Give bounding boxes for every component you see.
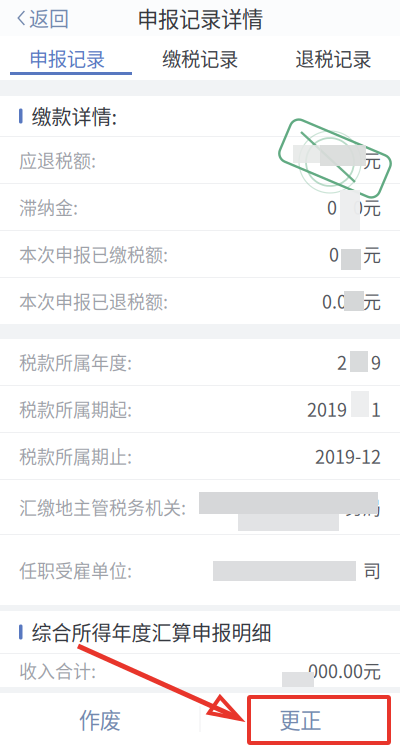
staticText: 2019 1 [307, 396, 381, 422]
staticText: 应退税额: [19, 147, 96, 173]
button[interactable]: 更正 [200, 693, 400, 745]
staticText: 2019-12 [315, 443, 381, 469]
button[interactable]: 返回 [0, 0, 83, 36]
staticText: 0 元 [329, 241, 381, 267]
staticText: 0 0元 [327, 194, 381, 220]
staticText: 本次申报已缴税额: [19, 241, 168, 267]
staticText: 收入合计: [19, 657, 96, 684]
staticText: 更正 [279, 704, 321, 734]
staticText: 0.0 元 [322, 288, 381, 314]
staticText: 税款所属年度: [19, 349, 132, 375]
button[interactable]: 申报记录 [0, 36, 133, 80]
staticText: 元 [363, 147, 381, 173]
staticText: 任职受雇单位: [19, 557, 132, 583]
button[interactable]: 作废 [0, 693, 199, 745]
button[interactable]: 退税记录 [267, 36, 400, 80]
staticText: 缴款详情: [31, 101, 117, 130]
staticText: 滞纳金: [19, 194, 78, 220]
button[interactable]: 缴税记录 [133, 36, 267, 80]
staticText: 2 9 [337, 349, 381, 375]
staticText: 税款所属期止: [19, 443, 132, 469]
staticText: 作废 [79, 704, 121, 734]
staticText: 本次申报已退税额: [19, 288, 168, 314]
staticText: 司 [363, 557, 381, 583]
staticText: 税款所属期起: [19, 396, 132, 422]
staticText: 务局 [345, 494, 381, 520]
staticText: 综合所得年度汇算申报明细 [31, 617, 271, 646]
staticText: 汇缴地主管税务机关: [19, 494, 186, 520]
staticText: 退税记录 [295, 44, 371, 72]
staticText: 申报记录 [29, 44, 105, 72]
staticText: 000.00元 [308, 657, 381, 684]
staticText: 缴税记录 [162, 44, 238, 72]
staticText: 返回 [29, 3, 69, 32]
staticText: 申报记录详情 [137, 3, 263, 33]
